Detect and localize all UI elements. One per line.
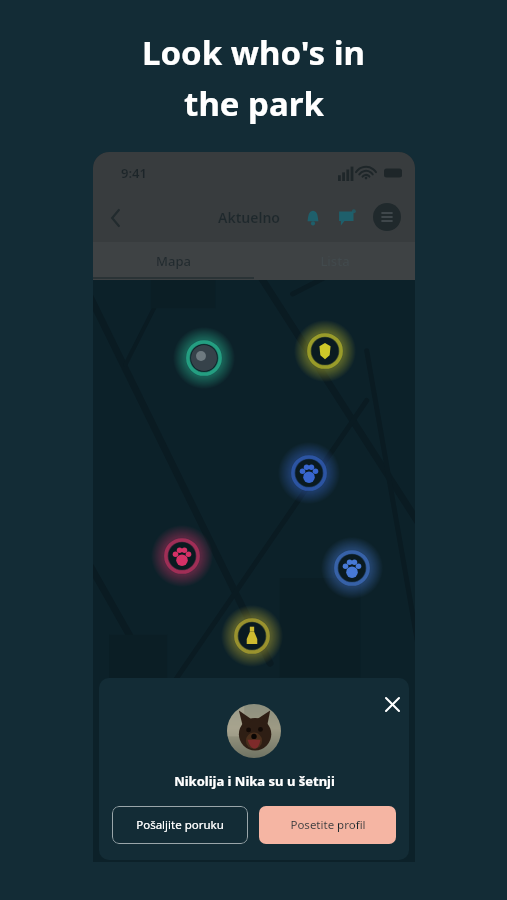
- staticText: Nikolija i Nika su u šetnji: [174, 772, 335, 790]
- staticText: Aktuelno: [218, 208, 280, 227]
- button[interactable]: Map marker: [173, 327, 235, 389]
- button[interactable]: Map marker: [321, 537, 383, 599]
- staticText: Look who's in: [142, 30, 365, 75]
- button[interactable]: Map marker: [278, 442, 340, 504]
- button[interactable]: Posetite profil: [259, 806, 396, 844]
- button[interactable]: Messages: [335, 206, 359, 230]
- button[interactable]: [227, 704, 281, 758]
- staticText: the park: [184, 81, 324, 126]
- button[interactable]: Map marker: [221, 605, 283, 667]
- staticText: Pošaljite poruku: [136, 817, 224, 833]
- button[interactable]: Map marker: [151, 525, 213, 587]
- button[interactable]: Map marker: [294, 320, 356, 382]
- button[interactable]: Mapa: [93, 242, 254, 280]
- button[interactable]: Profile: [373, 203, 401, 231]
- button[interactable]: Pošaljite poruku: [112, 806, 248, 844]
- staticText: Posetite profil: [290, 817, 366, 833]
- button[interactable]: Close: [379, 691, 405, 717]
- button[interactable]: Back: [101, 203, 131, 233]
- button[interactable]: Notifications: [301, 206, 325, 230]
- staticText: Mapa: [156, 252, 191, 270]
- staticText: 9:41: [121, 164, 147, 182]
